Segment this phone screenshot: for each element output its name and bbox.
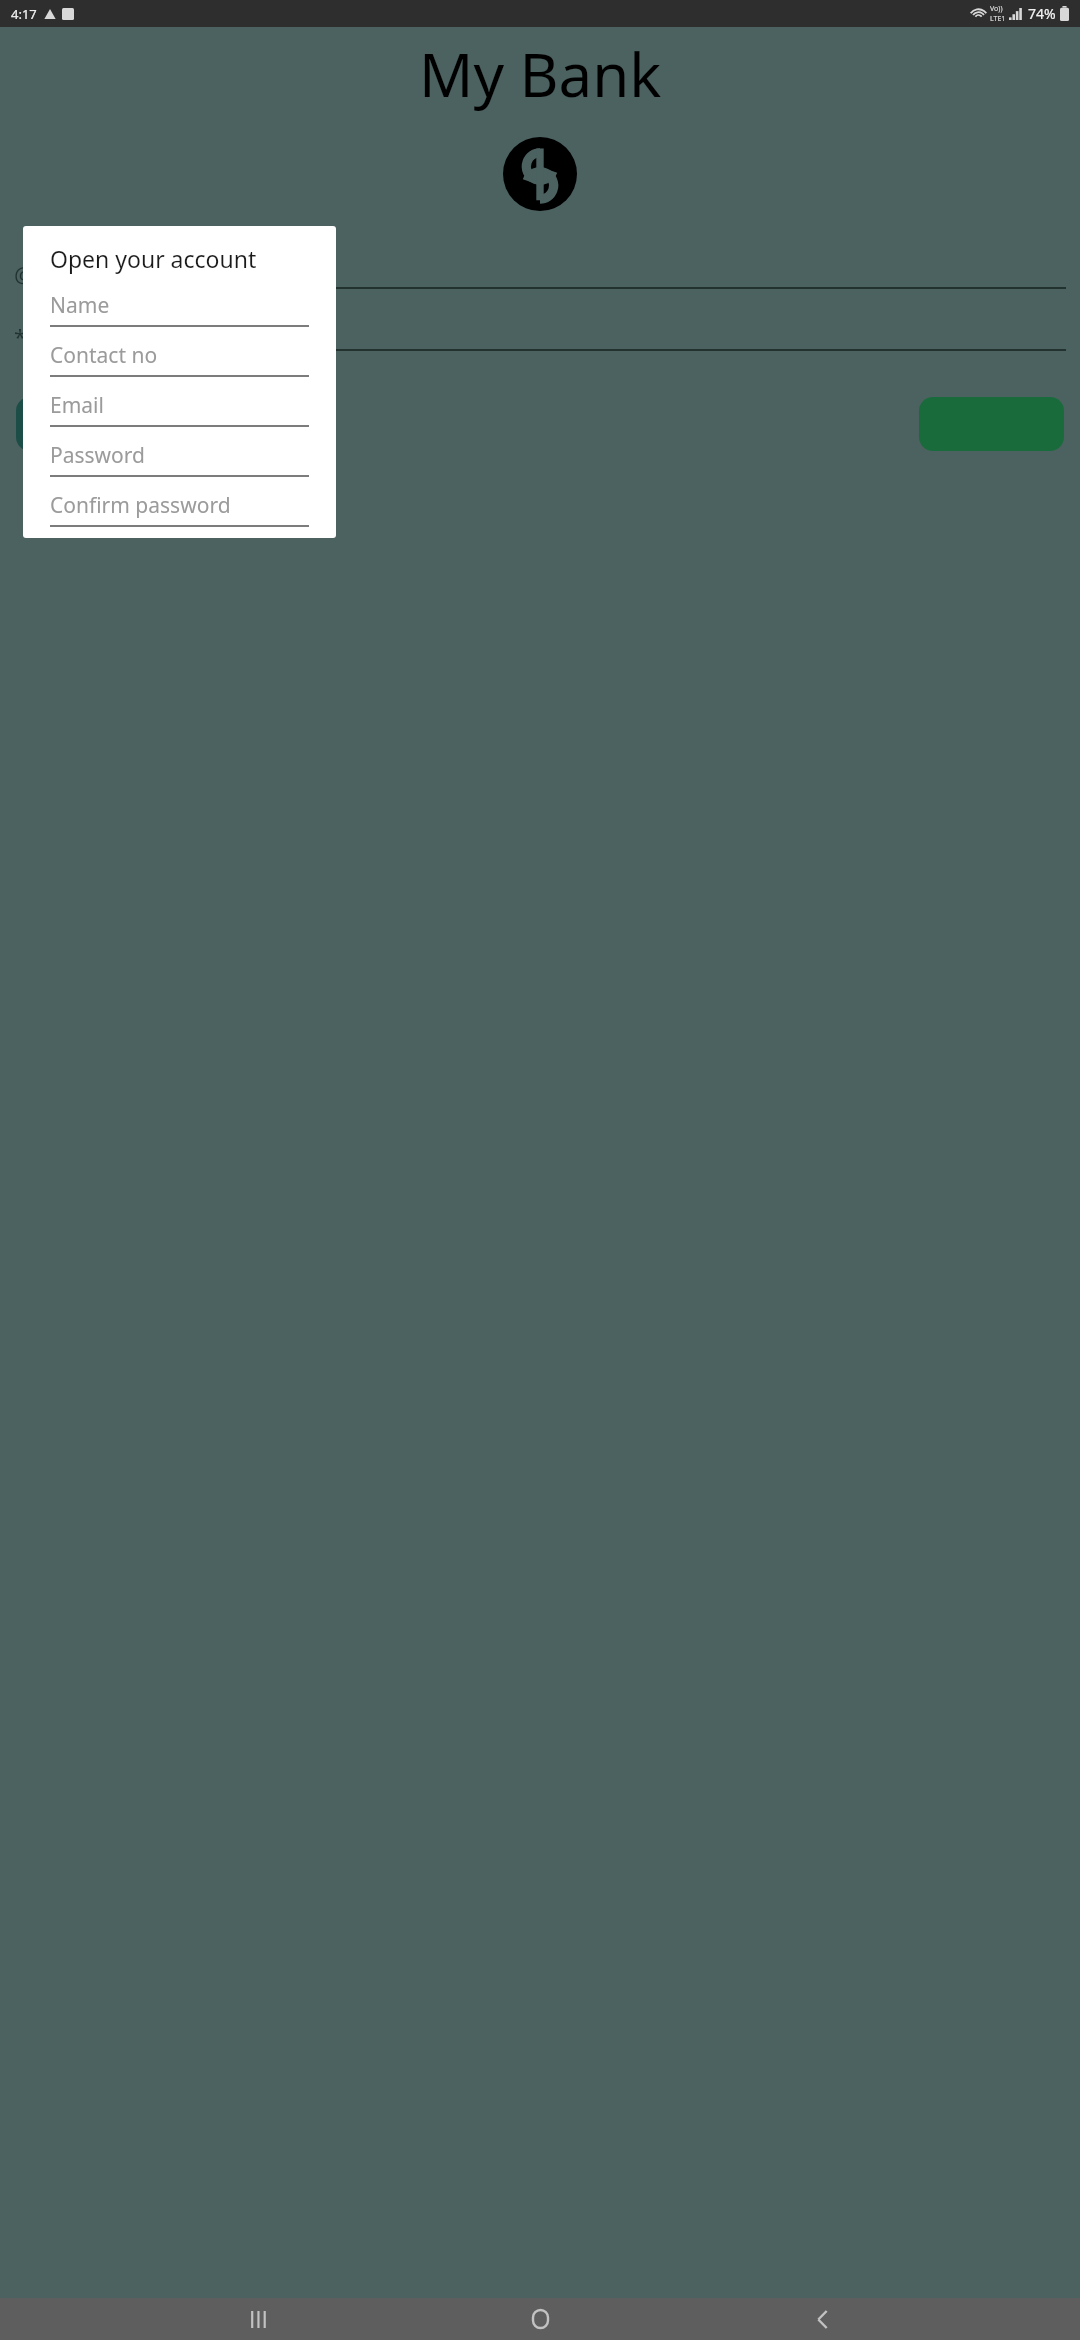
- staticText: Email: [50, 391, 104, 420]
- button[interactable]: Name: [23, 291, 336, 341]
- staticText: Password: [50, 441, 145, 470]
- button[interactable]: Login: [16, 397, 161, 451]
- staticText: @: [14, 259, 34, 289]
- button[interactable]: Email: [23, 391, 336, 441]
- button[interactable]: Sign up: [919, 397, 1064, 451]
- button[interactable]: Confirm password: [23, 491, 336, 538]
- staticText: 74%: [1028, 4, 1056, 23]
- button[interactable]: Contact no: [23, 341, 336, 391]
- staticText: LTE1: [990, 14, 1006, 24]
- staticText: Confirm password: [50, 491, 231, 520]
- button[interactable]: Password: [23, 441, 336, 491]
- button[interactable]: *: [14, 321, 1066, 351]
- staticText: 4:17: [11, 5, 37, 23]
- staticText: My Bank: [419, 33, 662, 115]
- button[interactable]: Home: [516, 2298, 564, 2340]
- staticText: *: [14, 321, 27, 351]
- staticText: Name: [50, 291, 110, 320]
- staticText: Vo)): [990, 4, 1003, 14]
- button[interactable]: Recent apps: [234, 2298, 282, 2340]
- staticText: Contact no: [50, 341, 158, 370]
- button[interactable]: @: [14, 259, 1066, 289]
- button[interactable]: Back: [798, 2298, 846, 2340]
- staticText: Open your account: [50, 243, 257, 274]
